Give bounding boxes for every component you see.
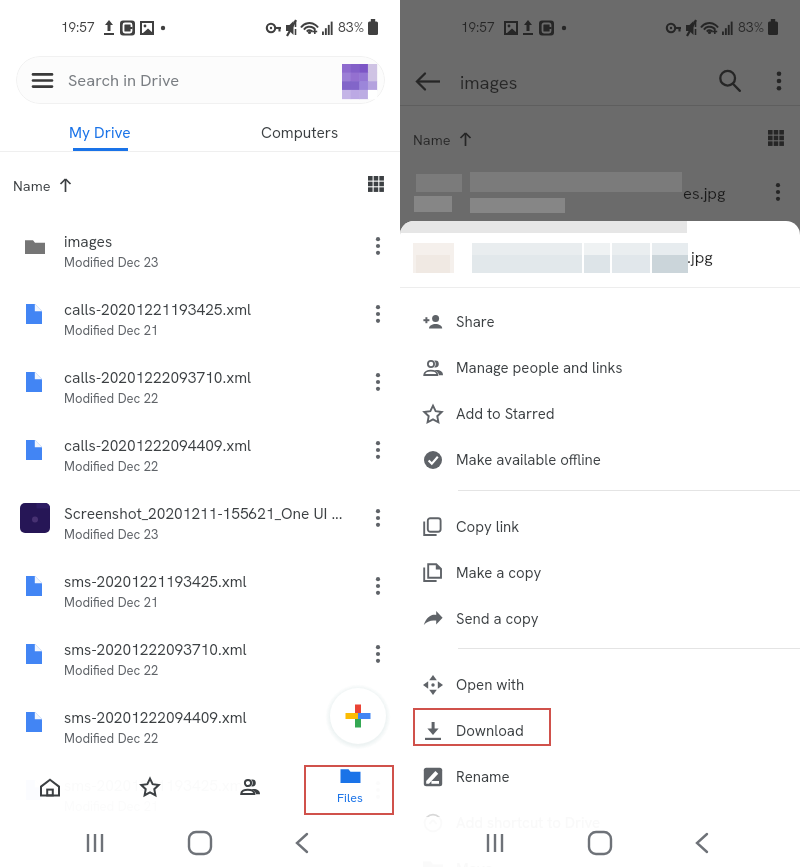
staticText: 83% xyxy=(738,18,765,36)
staticText: Modified Dec 23 xyxy=(64,526,159,543)
button[interactable]: More options xyxy=(360,552,396,620)
button[interactable]: images xyxy=(0,212,400,280)
button[interactable]: Navigate up xyxy=(416,69,441,94)
button[interactable]: Download xyxy=(400,708,800,754)
staticText: calls-20201221193425.xml xyxy=(64,299,354,319)
button[interactable]: Open navigation drawer xyxy=(16,56,385,104)
staticText: calls-20201222094409.xml xyxy=(64,435,354,455)
button[interactable]: sms-20201222094409.xml xyxy=(0,688,400,756)
button[interactable]: Screenshot_20201211-155621_One UI ... xyxy=(0,484,400,552)
staticText: Make a copy xyxy=(456,563,542,583)
staticText: calls-20201222093710.xml xyxy=(64,367,354,387)
button[interactable]: More options xyxy=(360,688,396,756)
staticText: Modified Dec 22 xyxy=(64,662,159,679)
staticText: sms-20201222094409.xml xyxy=(64,707,354,727)
staticText: Modified Dec 21 xyxy=(64,594,159,611)
staticText: sms-20201221193425.xml xyxy=(64,571,354,591)
button[interactable]: Name xyxy=(13,172,73,198)
staticText: Name xyxy=(413,130,451,149)
staticText: Download xyxy=(456,721,524,741)
staticText: Modified Dec 22 xyxy=(64,390,159,407)
button[interactable]: sms-20201221193425.xml xyxy=(0,756,400,824)
button[interactable]: More options xyxy=(360,416,396,484)
other: Home xyxy=(40,777,60,797)
button[interactable]: Open with xyxy=(400,662,800,708)
button[interactable]: Shared with me xyxy=(200,758,300,815)
staticText: Modified Dec 21 xyxy=(64,322,159,339)
button[interactable]: Home xyxy=(0,758,100,815)
button[interactable]: calls-20201222093710.xml xyxy=(0,348,400,416)
button[interactable]: My Drive xyxy=(40,112,160,152)
button[interactable]: Rename xyxy=(400,754,800,800)
staticText: Screenshot_20201211-155621_One UI ... xyxy=(64,503,354,523)
staticText: Share xyxy=(456,312,495,332)
staticText: Send a copy xyxy=(456,609,539,629)
button[interactable]: calls-20201221193425.xml xyxy=(0,280,400,348)
staticText: Files xyxy=(337,789,363,805)
button[interactable]: Move xyxy=(400,846,800,867)
button[interactable]: More options xyxy=(360,484,396,552)
staticText: Copy link xyxy=(456,517,520,537)
staticText: sms-20201221193425.xml xyxy=(64,775,354,795)
button[interactable]: Computers xyxy=(240,112,360,152)
button[interactable]: More options xyxy=(360,348,396,416)
staticText: sms-20201222093710.xml xyxy=(64,639,354,659)
button[interactable]: Account xyxy=(342,64,380,102)
staticText: Computers xyxy=(261,122,339,142)
other: Starred xyxy=(140,777,160,797)
button[interactable]: Search xyxy=(718,69,741,92)
staticText: Make available offline xyxy=(456,450,601,470)
button[interactable]: sms-20201222093710.xml xyxy=(0,620,400,688)
staticText: Name xyxy=(13,176,51,195)
button[interactable]: Make available offline xyxy=(400,437,800,483)
other: Shared with me xyxy=(240,777,260,797)
other: Open navigation drawer xyxy=(33,71,52,90)
button[interactable]: Manage people and links xyxy=(400,345,800,391)
staticText: Add to Starred xyxy=(456,404,555,424)
staticText: Rename xyxy=(456,767,510,787)
staticText: Manage people and links xyxy=(456,358,623,378)
staticText: Modified Dec 23 xyxy=(64,254,159,271)
staticText: .jpg xyxy=(687,246,713,267)
button[interactable]: sms-20201221193425.xml xyxy=(0,552,400,620)
staticText: Modified Dec 22 xyxy=(64,458,159,475)
button[interactable]: calls-20201222094409.xml xyxy=(0,416,400,484)
button[interactable]: Make a copy xyxy=(400,550,800,596)
button[interactable]: Add to Starred xyxy=(400,391,800,437)
staticText: Modified Dec 22 xyxy=(64,730,159,747)
button[interactable]: More options xyxy=(360,212,396,280)
button[interactable]: Share xyxy=(400,299,800,345)
button[interactable]: Create new file xyxy=(330,688,386,744)
button[interactable]: More options xyxy=(360,280,396,348)
staticText: images xyxy=(64,231,354,251)
staticText: My Drive xyxy=(69,122,131,142)
staticText: 83% xyxy=(338,18,365,36)
button[interactable]: More options xyxy=(764,66,794,96)
staticText: Search in Drive xyxy=(68,69,180,90)
button[interactable]: More options xyxy=(360,756,396,824)
button[interactable]: Send a copy xyxy=(400,596,800,642)
staticText: Open with xyxy=(456,675,525,695)
staticText: es.jpg xyxy=(683,182,726,203)
button[interactable]: Add shortcut to Drive xyxy=(400,800,800,846)
other: Files xyxy=(340,765,361,786)
staticText: Add shortcut to Drive xyxy=(456,813,601,833)
button[interactable]: Files xyxy=(300,758,400,815)
button[interactable]: Copy link xyxy=(400,504,800,550)
staticText: 19:57 xyxy=(61,18,95,36)
button[interactable]: Switch to grid view xyxy=(368,176,385,193)
staticText: 19:57 xyxy=(461,18,495,36)
staticText: images xyxy=(460,70,518,94)
button[interactable]: More options xyxy=(360,620,396,688)
button[interactable]: Starred xyxy=(100,758,200,815)
